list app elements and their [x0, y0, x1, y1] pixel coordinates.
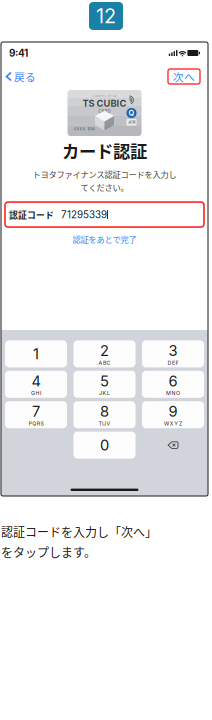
staticText: ABC — [98, 359, 111, 366]
staticText: WXYZ — [164, 420, 182, 427]
button[interactable] — [142, 432, 204, 459]
button[interactable]: 6 — [142, 371, 204, 398]
button[interactable]: 8 — [73, 401, 135, 428]
staticText: 認証をあとで完了 — [72, 233, 136, 245]
button[interactable]: 9 — [142, 401, 204, 428]
staticText: TS CUBIC — [82, 98, 126, 109]
button[interactable]: 1 — [5, 340, 67, 367]
button[interactable]: 4 — [5, 371, 67, 398]
staticText: 4 — [31, 372, 40, 390]
staticText: 8 — [100, 403, 109, 420]
staticText: 次へ — [173, 69, 195, 84]
button[interactable]: 2 — [73, 340, 135, 367]
staticText: 71295339 — [61, 209, 107, 220]
staticText: 認証コード — [9, 208, 54, 221]
staticText: 戻る — [14, 69, 36, 84]
staticText: MNO — [166, 390, 180, 396]
staticText: CARD — [98, 109, 110, 114]
staticText: 2 — [100, 342, 109, 359]
button[interactable]: 0 — [73, 432, 135, 459]
button[interactable]: 5 — [73, 371, 135, 398]
staticText: TUV — [98, 420, 111, 427]
staticText: 認証コードを入力し「次へ」 — [1, 523, 157, 540]
staticText: 0 — [100, 436, 109, 454]
staticText: 5 — [100, 372, 109, 390]
staticText: XXXX 1234 — [73, 127, 94, 131]
staticText: 9:41 — [9, 47, 28, 59]
button[interactable]: 認証コード — [5, 202, 204, 227]
staticText: トヨタファイナンス認証コードを入力し — [32, 168, 176, 180]
button[interactable]: 認証をあとで完了 — [66, 230, 142, 248]
staticText: 6 — [168, 372, 177, 390]
button[interactable]: 戻る — [1, 66, 41, 86]
button[interactable]: 次へ — [168, 69, 200, 84]
staticText: JCB — [128, 120, 135, 124]
staticText: Q — [128, 109, 134, 117]
staticText: トヨタファイナンス — [92, 94, 117, 98]
staticText: 12 — [96, 4, 116, 28]
staticText: 7 — [32, 403, 40, 420]
staticText: 9 — [168, 403, 177, 420]
staticText: JKL — [99, 390, 110, 396]
staticText: 1 — [33, 345, 39, 363]
staticText: GHI — [31, 390, 41, 396]
staticText: PQRS — [29, 420, 43, 427]
staticText: てください。 — [80, 181, 128, 193]
staticText: 3 — [168, 342, 177, 359]
staticText: DEF — [167, 359, 179, 366]
button[interactable]: 3 — [142, 340, 204, 367]
button[interactable]: 7 — [5, 401, 67, 428]
staticText: カード認証 — [62, 138, 147, 163]
staticText: をタップします。 — [1, 543, 96, 561]
